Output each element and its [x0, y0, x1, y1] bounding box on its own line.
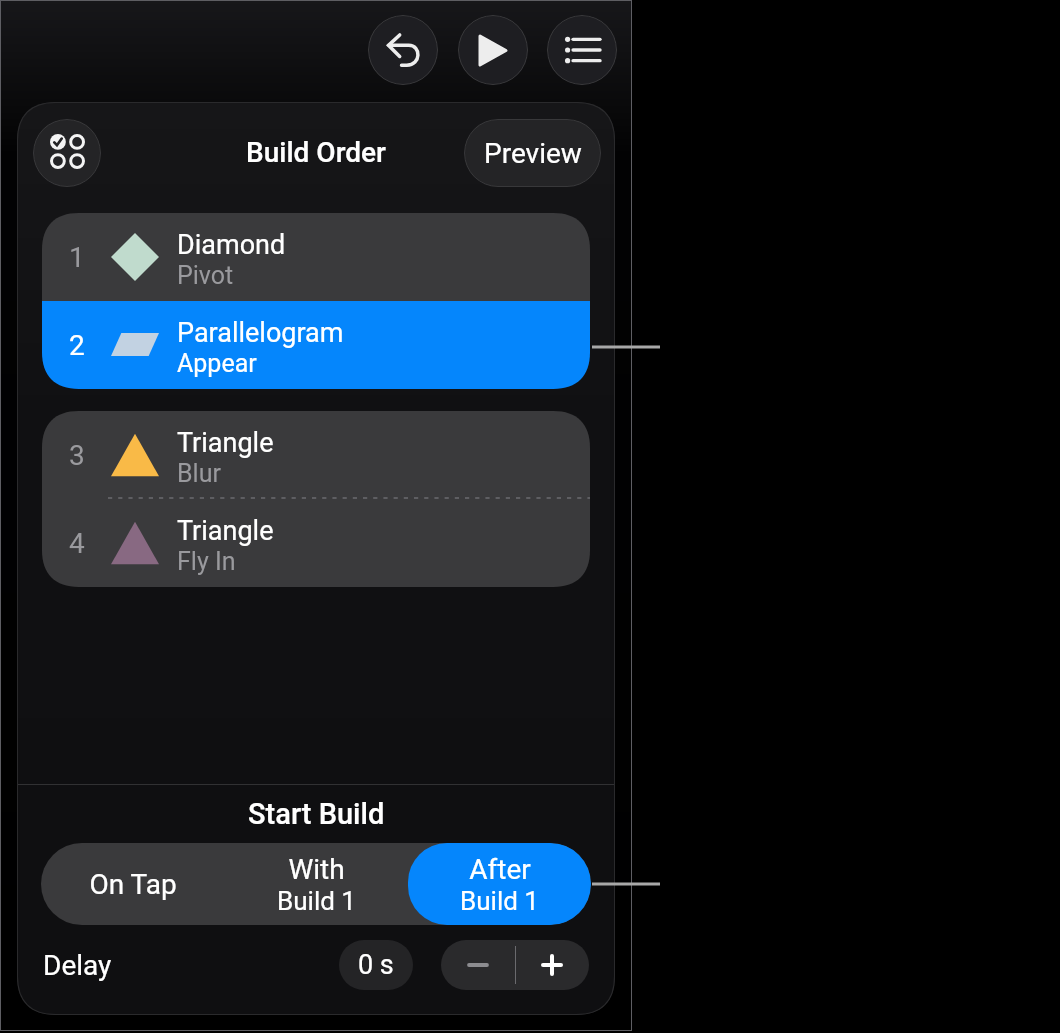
button[interactable]: After	[408, 843, 591, 925]
staticText: 4	[69, 527, 85, 560]
staticText: Build 1	[460, 886, 539, 916]
button[interactable]: Increase delay	[515, 940, 589, 990]
staticText: Start Build	[248, 797, 385, 831]
button[interactable]: Decrease delay	[441, 940, 515, 990]
staticText: Pivot	[177, 261, 234, 290]
staticText: Triangle	[177, 515, 274, 547]
staticText: Delay	[43, 949, 112, 982]
button[interactable]: 3	[42, 411, 590, 499]
staticText: 2	[69, 329, 85, 362]
staticText: After	[469, 853, 531, 886]
staticText: On Tap	[89, 868, 177, 901]
staticText: Build 1	[277, 886, 356, 916]
staticText: Preview	[484, 137, 582, 170]
staticText: Build Order	[246, 136, 386, 169]
staticText: 1	[69, 241, 85, 274]
button[interactable]: On Tap	[41, 843, 225, 925]
staticText: Fly In	[177, 547, 236, 576]
staticText: Diamond	[177, 229, 286, 261]
button[interactable]: With	[225, 843, 408, 925]
staticText: Appear	[177, 349, 257, 378]
button[interactable]: Animations	[33, 119, 101, 187]
staticText: Parallelogram	[177, 317, 344, 349]
button[interactable]: 2	[42, 301, 590, 389]
staticText: Blur	[177, 459, 221, 488]
button[interactable]: 4	[42, 499, 590, 587]
button[interactable]: 0 s	[339, 940, 413, 990]
button[interactable]: Undo	[368, 15, 438, 85]
button[interactable]: 1	[42, 213, 590, 301]
button[interactable]: Play	[458, 15, 528, 85]
staticText: 3	[69, 439, 85, 472]
staticText: With	[288, 853, 345, 886]
button[interactable]: Build list	[547, 15, 617, 85]
staticText: Triangle	[177, 427, 274, 459]
button[interactable]: Preview	[464, 119, 601, 187]
staticText: 0 s	[358, 949, 394, 981]
